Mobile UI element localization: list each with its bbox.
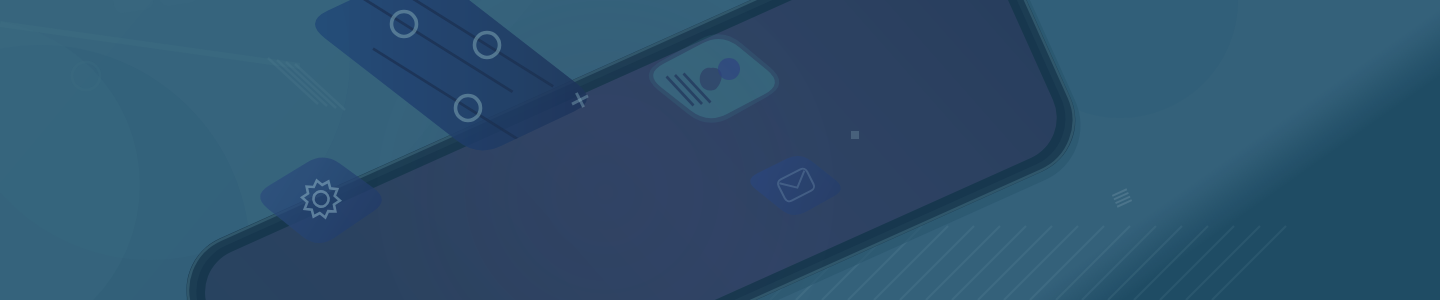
button[interactable]: Mobile app development hero banner bbox=[0, 0, 1440, 300]
